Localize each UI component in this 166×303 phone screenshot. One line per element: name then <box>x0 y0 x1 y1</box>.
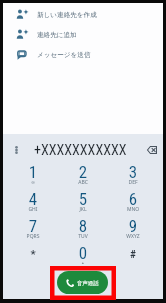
button[interactable]: * <box>8 244 58 271</box>
staticText: 4 <box>8 189 58 209</box>
button[interactable]: 3 <box>108 163 158 190</box>
staticText: 8 <box>58 216 108 236</box>
staticText: +XXXXXXXXXXX <box>34 142 127 159</box>
button[interactable]: More options <box>9 143 23 157</box>
staticText: WXYZ <box>108 233 158 240</box>
staticText: MNO <box>108 206 158 213</box>
staticText: + <box>58 260 108 265</box>
staticText: ∞ <box>8 179 58 185</box>
staticText: ABC <box>58 179 108 186</box>
button[interactable]: 新しい連絡先を作成 <box>3 5 163 25</box>
button[interactable]: 7 <box>8 217 58 244</box>
button[interactable]: 2 <box>58 163 108 190</box>
staticText: 1 <box>8 162 58 182</box>
button[interactable]: # <box>108 244 158 271</box>
button[interactable]: 0 <box>58 244 108 271</box>
button[interactable]: 5 <box>58 190 108 217</box>
staticText: 2 <box>58 162 108 182</box>
button[interactable]: 音声通話 <box>57 271 108 294</box>
staticText: 5 <box>58 189 108 209</box>
staticText: * <box>8 247 58 260</box>
staticText: メッセージを送信 <box>37 51 91 59</box>
button[interactable]: 8 <box>58 217 108 244</box>
button[interactable]: Backspace <box>145 143 159 157</box>
staticText: TUV <box>58 233 108 240</box>
staticText: 6 <box>108 189 158 209</box>
button[interactable]: 4 <box>8 190 58 217</box>
staticText: JKL <box>58 206 108 213</box>
staticText: PQRS <box>8 233 58 240</box>
button[interactable]: 6 <box>108 190 158 217</box>
button[interactable]: 1 <box>8 163 58 190</box>
button[interactable]: メッセージを送信 <box>3 45 163 65</box>
button[interactable]: 連絡先に追加 <box>3 25 163 45</box>
staticText: GHI <box>8 206 58 213</box>
staticText: DEF <box>108 179 158 186</box>
staticText: 新しい連絡先を作成 <box>37 11 97 19</box>
staticText: 3 <box>108 162 158 182</box>
staticText: 7 <box>8 216 58 236</box>
staticText: 9 <box>108 216 158 236</box>
staticText: 0 <box>58 243 108 263</box>
staticText: 音声通話 <box>77 280 99 287</box>
button[interactable]: 9 <box>108 217 158 244</box>
staticText: 連絡先に追加 <box>37 31 77 39</box>
staticText: # <box>108 247 158 260</box>
